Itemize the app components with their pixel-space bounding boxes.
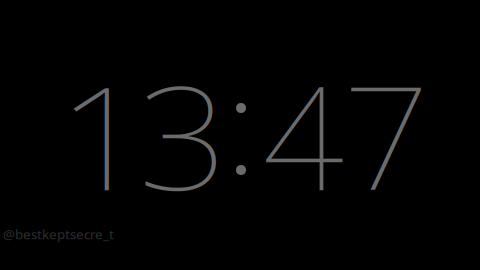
staticText: @bestkeptsecre_t (3, 225, 114, 243)
staticText: 7 (345, 40, 426, 230)
staticText: 1 (62, 40, 143, 230)
group: 13:47 (0, 0, 480, 270)
staticText: 3 (142, 40, 223, 230)
staticText: 4 (262, 40, 343, 230)
